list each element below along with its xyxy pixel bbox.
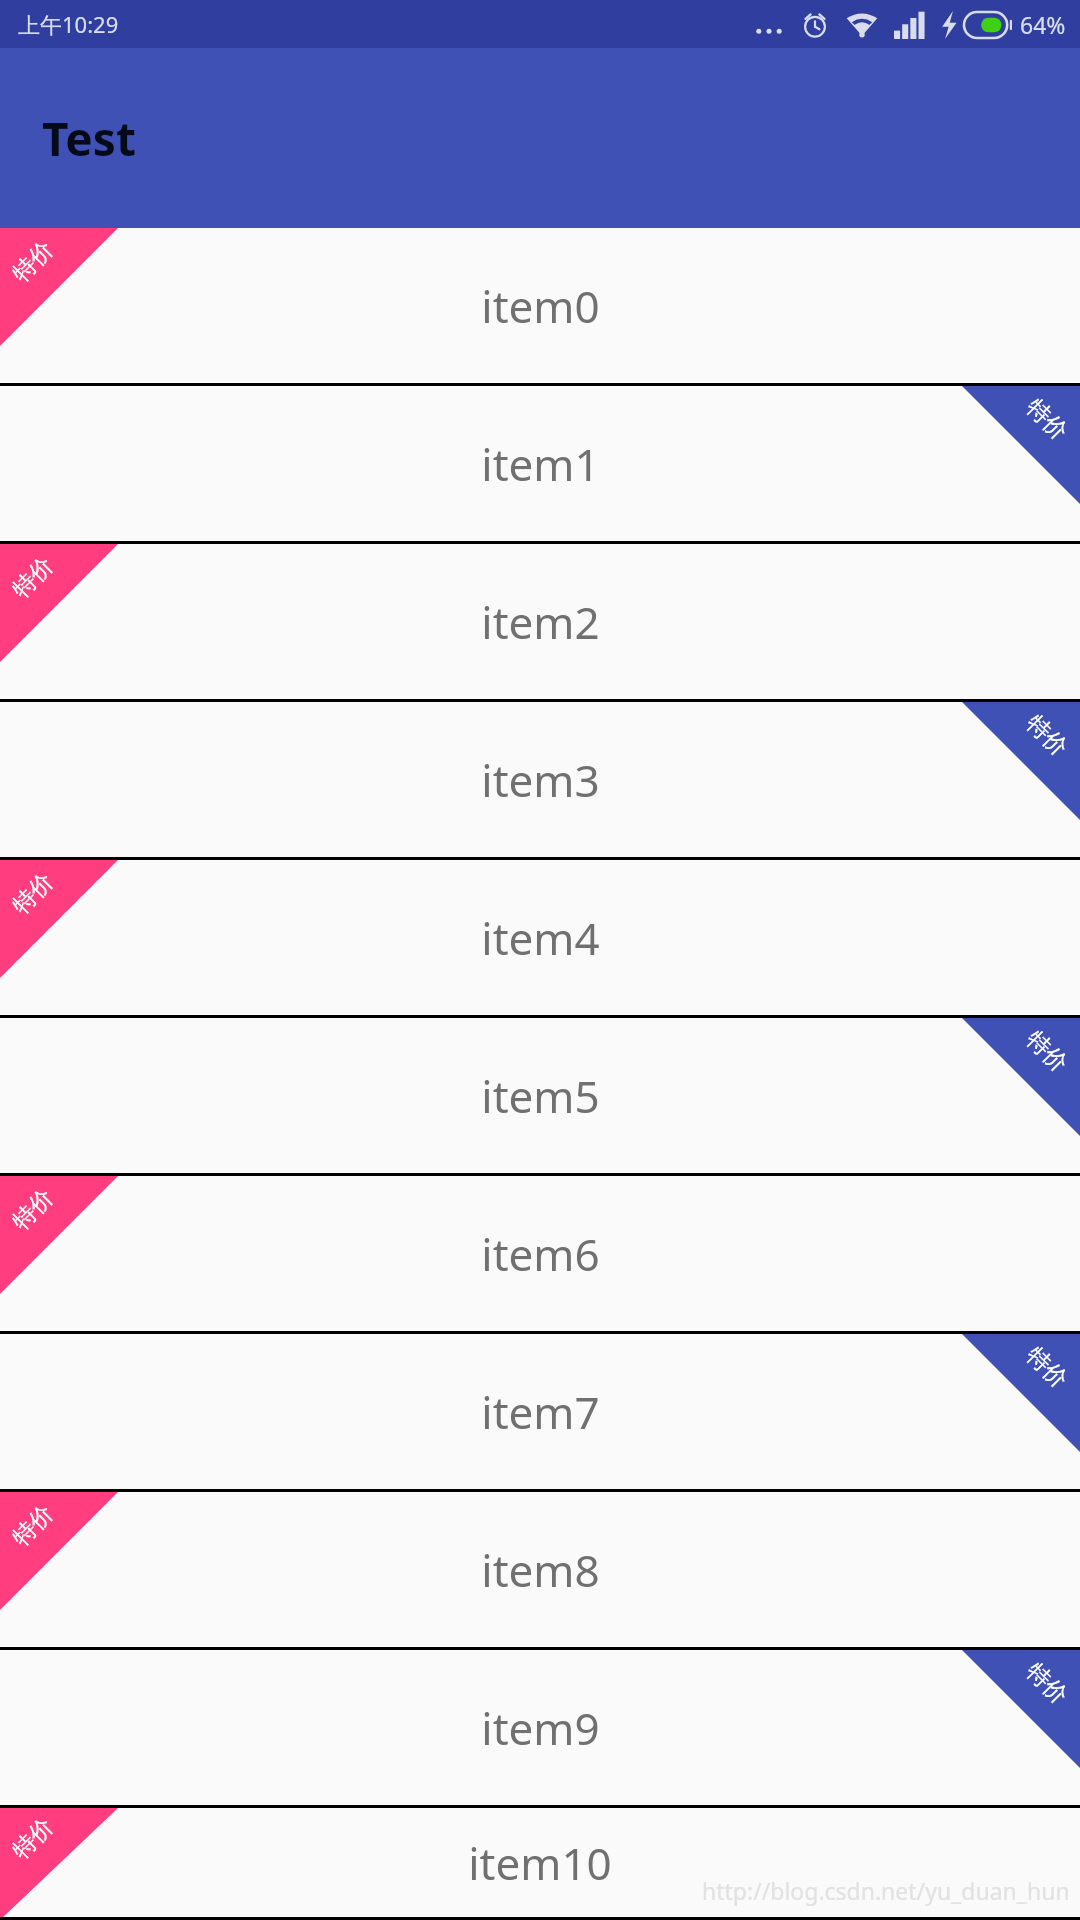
staticText: 特价 [1020,393,1073,446]
staticText: item8 [481,1540,600,1600]
button[interactable]: item7 [0,1334,1080,1492]
button[interactable]: item8 [0,1492,1080,1650]
staticText: item10 [468,1833,612,1893]
staticText: item7 [481,1382,600,1442]
staticText: item4 [481,908,600,968]
staticText: item6 [481,1224,600,1284]
button[interactable]: item2 [0,544,1080,702]
staticText: item1 [481,434,600,494]
button[interactable]: item4 [0,860,1080,1018]
staticText: item9 [481,1698,600,1758]
staticText: 特价 [6,867,59,920]
button[interactable]: item10 [0,1808,1080,1920]
staticText: item5 [481,1066,600,1126]
staticText: item0 [481,276,600,336]
button[interactable]: item3 [0,702,1080,860]
staticText: 特价 [6,1183,59,1236]
staticText: 特价 [1020,709,1073,762]
staticText: 特价 [6,235,59,288]
staticText: 特价 [6,1812,59,1865]
button[interactable]: item1 [0,386,1080,544]
staticText: 64% [1020,9,1066,40]
button[interactable]: item0 [0,228,1080,386]
button[interactable]: item5 [0,1018,1080,1176]
staticText: 特价 [6,551,59,604]
staticText: 上午10:29 [18,9,119,39]
staticText: Test [42,107,136,170]
button[interactable]: item6 [0,1176,1080,1334]
staticText: 特价 [1020,1657,1073,1710]
staticText: 特价 [1020,1025,1073,1078]
staticText: http://blog.csdn.net/yu_duan_hun [702,1875,1070,1906]
staticText: 特价 [1020,1341,1073,1394]
staticText: 特价 [6,1499,59,1552]
staticText: item2 [481,592,600,652]
button[interactable]: item9 [0,1650,1080,1808]
staticText: item3 [481,750,600,810]
